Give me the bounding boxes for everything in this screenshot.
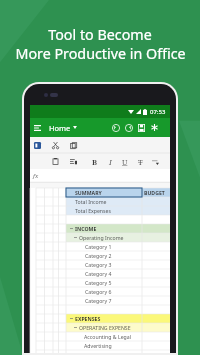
staticText: Advertising	[84, 342, 112, 349]
staticText: fx	[33, 172, 39, 180]
staticText: Category 7	[85, 297, 112, 304]
staticText: Category 1	[85, 243, 112, 250]
staticText: BUDGET	[144, 189, 165, 196]
staticText: SUMMARY	[75, 189, 102, 196]
button[interactable]: Redo	[122, 118, 135, 137]
button[interactable]: Format painter	[67, 155, 80, 168]
button[interactable]: SUMMARY	[66, 188, 142, 197]
button[interactable]: Category 7	[66, 296, 142, 305]
button[interactable]: Category 4	[66, 269, 142, 278]
staticText: Tool to Become	[48, 25, 152, 44]
button[interactable]: Office	[31, 139, 44, 152]
button[interactable]: Save	[135, 118, 148, 137]
button[interactable]: Accounting & Legal	[66, 332, 142, 341]
button[interactable]: EXPENSES	[66, 314, 142, 323]
button[interactable]: U	[120, 155, 130, 168]
button[interactable]: Cut	[49, 139, 62, 152]
staticText: Category 4	[85, 270, 112, 277]
staticText: B	[92, 157, 98, 167]
staticText: Operating Income	[79, 234, 124, 241]
staticText: Total Expenses	[75, 207, 111, 214]
button[interactable]: Total Expenses	[66, 206, 142, 215]
staticText: Category 3	[85, 261, 112, 268]
staticText: EXPENSES	[75, 315, 101, 322]
staticText: INCOME	[75, 225, 97, 232]
button[interactable]: Category 6	[66, 287, 142, 296]
button[interactable]: Paste	[49, 155, 62, 168]
button[interactable]: Undo	[109, 118, 122, 137]
button[interactable]: OPERATING EXPENSE	[66, 323, 142, 332]
button[interactable]: Advertising	[66, 341, 142, 350]
staticText: Accounting & Legal	[84, 333, 132, 340]
staticText: Home	[49, 123, 71, 133]
button[interactable]: B	[90, 155, 100, 168]
button[interactable]: Category 3	[66, 260, 142, 269]
button[interactable]: INCOME	[66, 224, 142, 233]
staticText: I	[109, 157, 112, 167]
staticText: OPERATING EXPENSE	[79, 324, 131, 331]
button[interactable]: T	[135, 155, 145, 168]
staticText: 07:53	[150, 108, 166, 116]
staticText: T	[138, 157, 143, 167]
button[interactable]	[66, 215, 142, 224]
button[interactable]: Copy	[67, 139, 80, 152]
button[interactable]: Home	[49, 118, 77, 137]
staticText: Category 6	[85, 288, 112, 295]
button[interactable]	[66, 305, 142, 314]
button[interactable]: Operating Income	[66, 233, 142, 242]
staticText: U	[122, 157, 128, 167]
button[interactable]: More options	[148, 118, 161, 137]
button[interactable]: Total Income	[66, 197, 142, 206]
button[interactable]: Category 2	[66, 251, 142, 260]
staticText: Category 2	[85, 252, 112, 259]
button[interactable]: Text color	[149, 155, 162, 168]
staticText: Category 5	[85, 279, 112, 286]
button[interactable]: I	[105, 155, 115, 168]
staticText: More Productive in Office	[15, 44, 186, 63]
button[interactable]: Category 1	[66, 242, 142, 251]
button[interactable]: Category 5	[66, 278, 142, 287]
staticText: Total Income	[75, 198, 107, 205]
button[interactable]: Menu	[30, 118, 44, 137]
